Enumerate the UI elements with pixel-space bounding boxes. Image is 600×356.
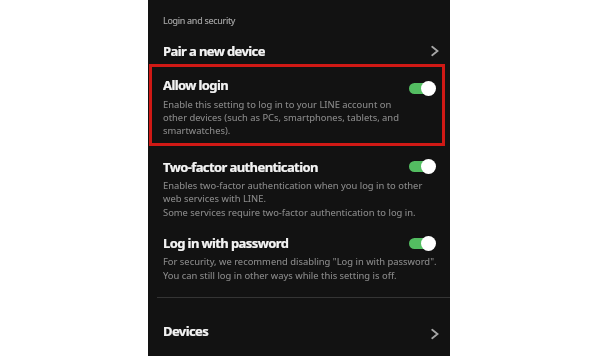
staticText: Enable this setting to log in to your LI… [163,98,392,111]
button[interactable] [409,83,434,94]
staticText: Pair a new device [163,42,265,60]
button[interactable] [148,318,450,350]
staticText: Login and security [163,14,236,26]
staticText: web services with LINE. [163,192,266,205]
staticText: Two-factor authentication [163,158,318,176]
button[interactable] [148,38,450,64]
staticText: Enables two-factor authentication when y… [163,179,423,192]
button[interactable] [148,153,450,219]
button[interactable] [409,161,434,172]
staticText: You can still log in other ways while th… [163,269,397,282]
staticText: Log in with password [163,234,289,252]
staticText: Some services require two-factor authent… [163,206,416,219]
button[interactable] [409,238,434,249]
staticText: smartwatches). [163,124,231,137]
staticText: Allow login [163,76,229,94]
button[interactable] [152,67,442,143]
staticText: For security, we recommend disabling "Lo… [163,255,437,268]
staticText: other devices (such as PCs, smartphones,… [163,111,399,124]
button[interactable] [148,230,450,286]
staticText: Devices [163,322,209,340]
